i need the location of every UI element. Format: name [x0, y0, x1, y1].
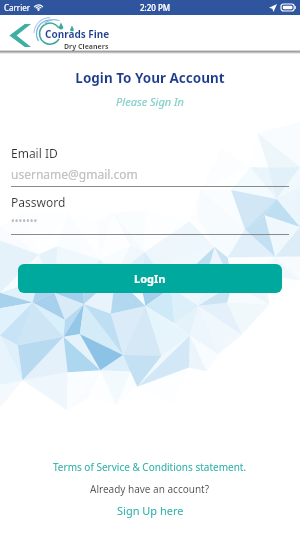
staticText: Login To Your Account [0, 69, 300, 87]
button[interactable]: Terms of Service & Conditions statement. [49, 458, 251, 476]
staticText: Email ID [11, 145, 58, 161]
staticText: Dry Cleaners [64, 42, 109, 52]
staticText: 2:20 PM [140, 2, 171, 13]
staticText: Conrads Fine [45, 27, 110, 41]
button[interactable]: Sign Up here [113, 501, 188, 520]
staticText: Please Sign In [0, 94, 300, 109]
staticText: Sign Up here [117, 503, 184, 518]
staticText: Terms of Service & Conditions statement. [53, 460, 247, 474]
staticText: ••••••• [11, 214, 38, 228]
staticText: username@gmail.com [11, 166, 138, 182]
staticText: Already have an account? [90, 482, 210, 496]
staticText: Password [11, 194, 66, 210]
staticText: Carrier [4, 2, 31, 13]
staticText: LogIn [134, 271, 166, 286]
button[interactable]: LogIn [18, 264, 282, 293]
button[interactable]: Back [0, 17, 38, 53]
